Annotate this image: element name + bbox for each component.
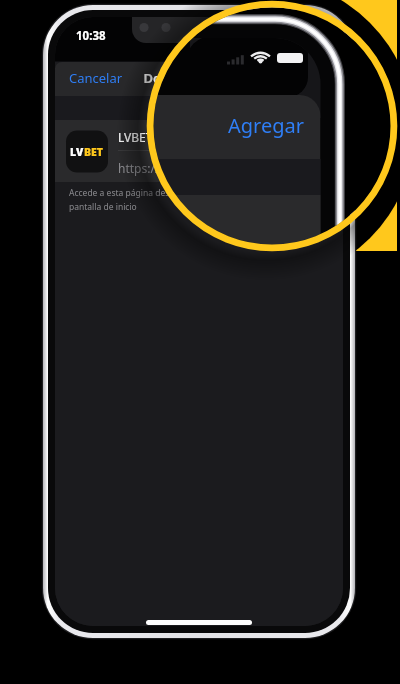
button[interactable]	[0, 0, 400, 684]
